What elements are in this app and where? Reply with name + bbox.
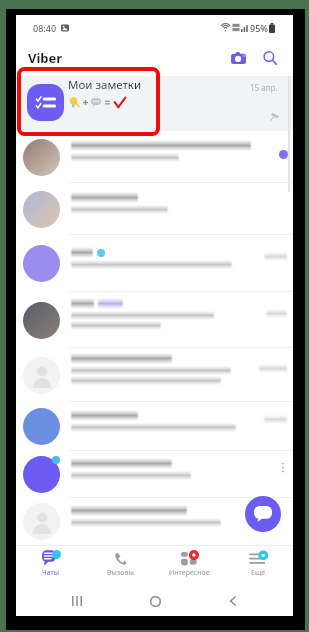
staticText: Вызовы — [107, 568, 134, 578]
button[interactable]: Home — [142, 588, 168, 614]
button[interactable]: Ещё — [224, 545, 293, 583]
button[interactable] — [16, 183, 293, 235]
button[interactable]: Чаты — [16, 545, 86, 583]
button[interactable] — [16, 131, 293, 183]
button[interactable] — [16, 498, 293, 545]
button[interactable]: Search — [258, 46, 282, 70]
button[interactable] — [16, 402, 293, 451]
staticText: 95% — [250, 22, 268, 34]
button[interactable]: Мои заметки — [16, 76, 293, 131]
button[interactable] — [16, 348, 293, 402]
button[interactable] — [16, 292, 293, 348]
button[interactable] — [16, 235, 293, 292]
staticText: 15 апр. — [250, 82, 278, 93]
staticText: Чаты — [42, 568, 60, 578]
staticText: Viber — [28, 49, 63, 67]
button[interactable]: New chat — [245, 496, 281, 532]
button[interactable]: Recents — [64, 588, 90, 614]
button[interactable]: Интересное — [155, 545, 224, 583]
staticText: Ещё — [251, 568, 266, 578]
button[interactable]: Camera — [226, 46, 250, 70]
button[interactable] — [16, 451, 293, 498]
staticText: Интересное — [169, 568, 210, 578]
staticText: 08:40 — [33, 22, 57, 34]
button[interactable]: Вызовы — [86, 545, 155, 583]
button[interactable]: Back — [220, 588, 246, 614]
staticText: Мои заметки — [68, 77, 142, 93]
